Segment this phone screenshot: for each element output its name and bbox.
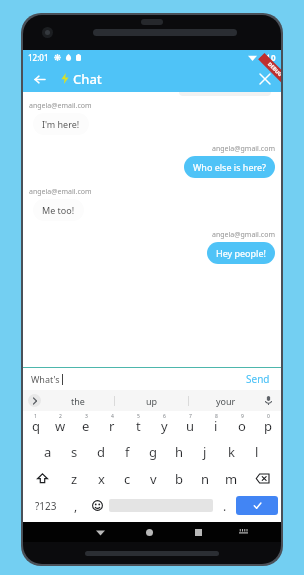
staticText: s xyxy=(71,443,78,461)
staticText: 2 xyxy=(59,413,62,420)
button[interactable]: Backspace xyxy=(244,465,281,492)
staticText: . xyxy=(223,498,227,514)
staticText: z xyxy=(71,470,78,488)
staticText: the xyxy=(71,395,85,407)
button[interactable]: j xyxy=(192,438,218,465)
staticText: 4 xyxy=(111,413,114,420)
button[interactable]: Send xyxy=(243,370,273,388)
staticText: 7 xyxy=(189,413,192,420)
staticText: o xyxy=(238,417,246,435)
staticText: h xyxy=(175,443,184,461)
staticText: r xyxy=(109,417,115,435)
staticText: your xyxy=(216,395,236,407)
button[interactable]: Emoji xyxy=(86,492,109,519)
staticText: angela@gmail.com xyxy=(212,144,275,154)
staticText: k xyxy=(228,443,235,461)
staticText: e xyxy=(82,417,90,435)
button[interactable]: x xyxy=(88,465,114,492)
staticText: angela@email.com xyxy=(29,101,92,111)
button[interactable]: ?123 xyxy=(26,492,65,519)
button[interactable]: a xyxy=(34,438,61,465)
button[interactable]: Enter xyxy=(236,496,278,515)
button[interactable]: Hey people! xyxy=(207,242,275,264)
button[interactable]: I'm here! xyxy=(33,113,89,135)
staticText: u xyxy=(186,417,195,435)
button[interactable]: Shift xyxy=(23,465,61,492)
staticText: I'm here! xyxy=(42,118,80,130)
staticText: Hey people! xyxy=(216,247,266,259)
button[interactable]: 0 xyxy=(255,411,281,438)
button[interactable]: 7 xyxy=(177,411,203,438)
staticText: Who else is here? xyxy=(193,161,266,173)
button[interactable]: c xyxy=(114,465,140,492)
button[interactable]: Hide keyboard xyxy=(76,528,125,537)
button[interactable]: g xyxy=(140,438,166,465)
button[interactable]: Me too! xyxy=(33,199,84,221)
button[interactable]: l xyxy=(244,438,270,465)
button[interactable]: 3 xyxy=(73,411,99,438)
button[interactable]: z xyxy=(61,465,88,492)
staticText: angela@email.com xyxy=(29,187,92,197)
staticText: t xyxy=(136,417,141,435)
button[interactable]: Recents xyxy=(174,529,223,536)
button[interactable]: f xyxy=(114,438,140,465)
staticText: Chat xyxy=(73,70,102,88)
button[interactable]: 4 xyxy=(99,411,125,438)
button[interactable]: 2 xyxy=(48,411,73,438)
staticText: 0 xyxy=(271,52,276,63)
staticText: 1 xyxy=(34,413,37,420)
staticText: w xyxy=(55,417,66,435)
staticText: 6 xyxy=(163,413,166,420)
button[interactable]: up xyxy=(115,390,188,411)
button[interactable]: b xyxy=(166,465,192,492)
button[interactable]: d xyxy=(88,438,114,465)
staticText: DEBUG xyxy=(266,61,281,78)
button[interactable]: 8 xyxy=(203,411,229,438)
staticText: What's xyxy=(31,373,60,385)
staticText: 0 xyxy=(267,413,270,420)
button[interactable]: 6 xyxy=(151,411,177,438)
staticText: angela@gmail.com xyxy=(212,230,275,240)
staticText: Send xyxy=(246,372,270,386)
staticText: 8 xyxy=(215,413,218,420)
button[interactable]: Switch input method xyxy=(223,529,264,535)
staticText: y xyxy=(161,417,168,435)
button[interactable]: Who else is here? xyxy=(184,156,275,178)
staticText: g xyxy=(149,443,157,461)
staticText: c xyxy=(124,470,131,488)
button[interactable]: , xyxy=(65,492,86,519)
staticText: b xyxy=(175,470,183,488)
staticText: 5 xyxy=(137,413,140,420)
button[interactable]: the xyxy=(41,390,114,411)
staticText: , xyxy=(74,498,78,514)
button[interactable]: Back xyxy=(30,70,48,88)
button[interactable]: . xyxy=(213,492,236,519)
button[interactable]: Voice input xyxy=(262,394,275,407)
staticText: a xyxy=(44,443,52,461)
button[interactable]: Expand suggestions xyxy=(28,394,41,407)
staticText: up xyxy=(146,395,158,407)
button[interactable]: n xyxy=(192,465,218,492)
staticText: q xyxy=(32,417,40,435)
button[interactable]: k xyxy=(218,438,244,465)
button[interactable]: v xyxy=(140,465,166,492)
button[interactable]: Close xyxy=(256,70,274,88)
button[interactable]: 9 xyxy=(229,411,255,438)
staticText: j xyxy=(203,443,207,461)
button[interactable]: Home xyxy=(125,529,174,536)
staticText: 12:01 xyxy=(28,52,49,63)
staticText: ?123 xyxy=(35,499,57,513)
staticText: v xyxy=(150,470,157,488)
staticText: n xyxy=(201,470,210,488)
staticText: 9 xyxy=(241,413,244,420)
staticText: p xyxy=(264,417,272,435)
button[interactable]: 1 xyxy=(23,411,48,438)
button[interactable]: m xyxy=(218,465,244,492)
button[interactable]: your xyxy=(189,390,262,411)
button[interactable]: 5 xyxy=(125,411,151,438)
staticText: 3 xyxy=(85,413,88,420)
staticText: Me too! xyxy=(42,204,75,216)
button[interactable]: s xyxy=(61,438,88,465)
button[interactable]: h xyxy=(166,438,192,465)
